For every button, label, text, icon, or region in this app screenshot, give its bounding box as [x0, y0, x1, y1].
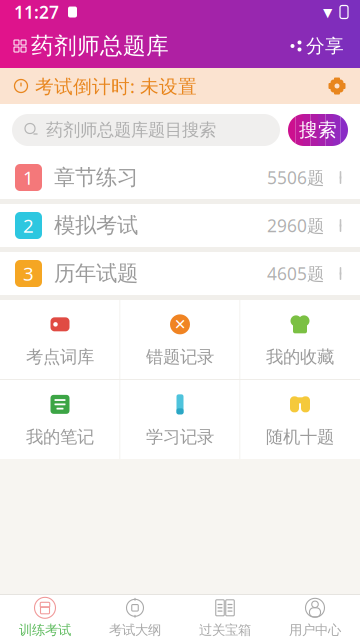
staticText: ▾ — [323, 1, 332, 23]
button[interactable]: 我的笔记 — [0, 380, 119, 459]
staticText: 学习记录 — [146, 426, 214, 448]
staticText: 搜索 — [299, 118, 337, 141]
staticText: 考试倒计时: 未设置 — [35, 74, 197, 98]
button[interactable]: 药剂师总题库题目搜索 — [12, 114, 280, 146]
staticText: 5506题 — [267, 166, 324, 189]
staticText: 模拟考试 — [54, 212, 138, 239]
button[interactable]: 学习记录 — [120, 380, 239, 459]
button[interactable]: 3 — [0, 252, 360, 295]
button[interactable]: 过关宝箱 — [180, 595, 270, 640]
button[interactable]: 考试倒计时: 未设置 — [0, 68, 360, 104]
button[interactable]: 训练考试 — [0, 595, 90, 640]
staticText: ✕ — [174, 316, 186, 333]
staticText: 2 — [23, 213, 34, 238]
staticText: 章节练习 — [54, 164, 138, 191]
staticText: 药剂师总题库题目搜索 — [46, 119, 216, 141]
staticText: 考点词库 — [26, 346, 94, 368]
button[interactable]: 1 — [0, 156, 360, 199]
button[interactable]: 考试大纲 — [90, 595, 180, 640]
button[interactable]: 考点词库 — [0, 300, 119, 379]
button[interactable]: 我的收藏 — [240, 300, 359, 379]
button[interactable]: 随机十题 — [240, 380, 359, 459]
staticText: 4605题 — [267, 262, 324, 285]
staticText: 1 — [23, 165, 34, 190]
staticText: 历年试题 — [54, 260, 138, 287]
staticText: 错题记录 — [146, 346, 214, 368]
staticText: 3 — [23, 261, 34, 286]
staticText: 分享 — [306, 34, 344, 57]
staticText: 我的笔记 — [26, 426, 94, 448]
button[interactable]: 分享 — [285, 28, 348, 63]
staticText: 药剂师总题库 — [31, 32, 169, 60]
staticText: 我的收藏 — [266, 346, 334, 368]
staticText: 用户中心 — [289, 622, 341, 638]
staticText: 2960题 — [267, 214, 324, 237]
button[interactable]: 用户中心 — [270, 595, 360, 640]
button[interactable]: 搜索 — [288, 114, 348, 146]
button[interactable]: 2 — [0, 204, 360, 247]
staticText: 考试大纲 — [109, 622, 161, 638]
staticText: 随机十题 — [266, 426, 334, 448]
staticText: 11:27 — [14, 0, 59, 23]
button[interactable]: ✕ — [120, 300, 239, 379]
staticText: 训练考试 — [19, 622, 71, 638]
staticText: 过关宝箱 — [199, 622, 251, 638]
